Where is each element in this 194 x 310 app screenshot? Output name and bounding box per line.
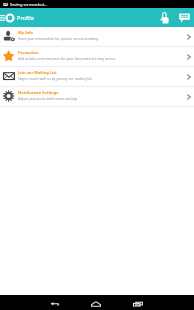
button[interactable]: Navigation menu [0, 8, 5, 27]
staticText: Notification Settings [18, 90, 59, 95]
button[interactable]: Back [35, 295, 75, 310]
staticText: Saving screenshot... [10, 2, 48, 7]
staticText: Store your information for quicker servi… [18, 36, 99, 41]
staticText: Join our Mailing List [18, 70, 57, 75]
button[interactable]: Chat [174, 8, 194, 27]
staticText: My Info [18, 30, 33, 35]
button[interactable]: Home [75, 295, 117, 310]
staticText: Add articles and resources for your favo… [18, 56, 116, 61]
staticText: Favourites [18, 50, 39, 55]
button[interactable]: Tap to call [154, 8, 174, 27]
button[interactable]: Recent apps [117, 295, 159, 310]
button[interactable]: Join our Mailing List [0, 67, 194, 86]
button[interactable]: Favourites [0, 47, 194, 66]
button[interactable]: My Info [0, 27, 194, 46]
staticText: Adjust your push notification settings [18, 96, 78, 101]
staticText: Profile [17, 14, 34, 22]
button[interactable]: Notification Settings [0, 87, 194, 106]
staticText: Stay in touch with us by joining our mai… [18, 76, 93, 81]
